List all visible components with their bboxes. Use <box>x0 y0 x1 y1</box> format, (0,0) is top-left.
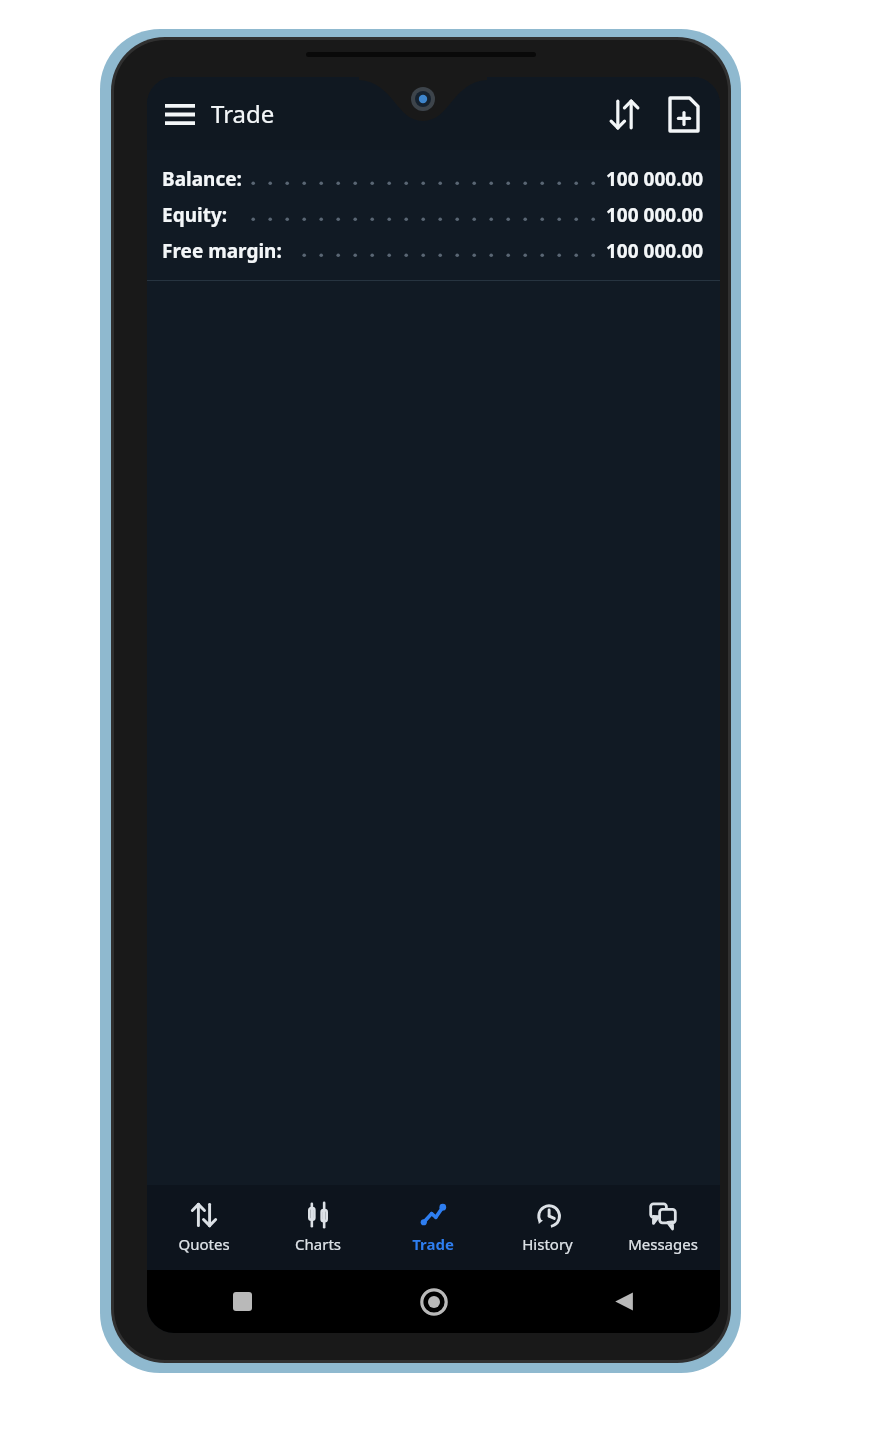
staticText: History <box>522 1234 573 1254</box>
button[interactable]: Trade <box>375 1185 490 1270</box>
staticText: Free margin: <box>162 238 282 264</box>
staticText: Balance: <box>162 166 242 192</box>
button[interactable]: Quotes <box>147 1185 261 1270</box>
staticText: Trade <box>412 1234 454 1254</box>
staticText: Messages <box>628 1234 698 1254</box>
staticText: 100 000.00 <box>606 166 704 192</box>
button[interactable]: History <box>490 1185 605 1270</box>
staticText: 100 000.00 <box>606 202 704 228</box>
staticText: Charts <box>295 1234 341 1254</box>
button[interactable]: New order <box>658 88 710 140</box>
staticText: Trade <box>211 97 275 130</box>
staticText: Equity: <box>162 202 228 228</box>
button[interactable]: Messages <box>605 1185 720 1270</box>
staticText: Quotes <box>178 1234 230 1254</box>
button[interactable]: Menu <box>157 91 203 137</box>
button[interactable]: Charts <box>261 1185 375 1270</box>
button[interactable]: Sort <box>598 88 650 140</box>
staticText: 100 000.00 <box>606 238 704 264</box>
